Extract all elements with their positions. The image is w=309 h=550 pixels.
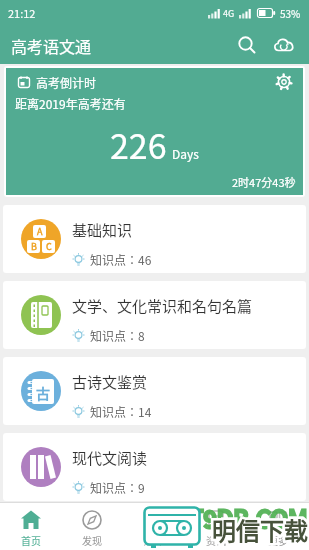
button[interactable]: 高考倒计时 [6, 68, 303, 195]
staticText: 题库 [144, 533, 164, 547]
staticText: C [46, 240, 52, 253]
staticText: A [37, 225, 43, 238]
staticText: 现代文阅读 [72, 447, 148, 469]
button[interactable] [267, 27, 303, 63]
button[interactable]: 发现 [61, 503, 123, 550]
staticText: 明信下载 [212, 512, 308, 547]
staticText: 更多 [268, 533, 288, 547]
staticText: 高考语文通 [11, 34, 92, 57]
staticText: 资讯 [206, 533, 226, 547]
staticText: 知识点：46 [90, 251, 152, 268]
staticText: 53% [280, 6, 301, 20]
button[interactable]: 古 [3, 357, 306, 425]
button[interactable]: 更多 [247, 503, 309, 550]
button[interactable]: 首页 [0, 503, 61, 550]
staticText: 高考倒计时 [36, 74, 97, 91]
button[interactable] [229, 27, 265, 63]
staticText: 21:12 [8, 5, 36, 21]
button[interactable]: 题库 [123, 503, 185, 550]
staticText: Days [172, 145, 199, 162]
staticText: 4G [223, 7, 235, 20]
staticText: 明信下载 [212, 512, 308, 547]
staticText: 基础知识 [72, 219, 133, 241]
staticText: 古 [36, 383, 50, 403]
staticText: 2时47分43秒 [232, 174, 296, 190]
button[interactable]: 现代文阅读 [3, 433, 306, 501]
button[interactable]: A [3, 205, 306, 273]
staticText: 文学、文化常识和名句名篇 [72, 295, 253, 317]
staticText: 226 [110, 120, 167, 169]
staticText: 知识点：14 [90, 403, 152, 420]
staticText: T9DB.COM [189, 500, 308, 535]
staticText: 古诗文鉴赏 [72, 371, 148, 393]
staticText: B [31, 240, 37, 253]
staticText: 发现 [82, 533, 102, 547]
staticText: 知识点：9 [90, 479, 145, 496]
button[interactable]: 资讯 [185, 503, 247, 550]
button[interactable]: 文学、文化常识和名句名篇 [3, 281, 306, 349]
staticText: 首页 [21, 533, 41, 547]
staticText: 距离2019年高考还有 [15, 95, 126, 112]
staticText: 知识点：8 [90, 327, 145, 344]
